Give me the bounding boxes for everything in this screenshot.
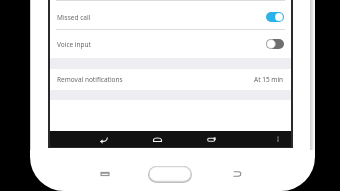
button[interactable]: Off [266, 39, 284, 49]
staticText: Voice input [57, 40, 91, 49]
button[interactable]: Back [92, 131, 114, 147]
button[interactable]: Missed call [50, 5, 291, 29]
button[interactable]: Home key [148, 166, 192, 183]
button[interactable]: Recent apps [200, 131, 222, 147]
button[interactable]: Menu [96, 166, 114, 182]
button[interactable]: Home [146, 131, 168, 147]
staticText: At 15 min [254, 75, 284, 84]
button[interactable]: Voice input [50, 30, 291, 58]
staticText: Missed call [57, 13, 91, 22]
button[interactable]: More options [269, 131, 287, 147]
button[interactable]: Removal notifications [50, 69, 291, 90]
button[interactable]: Back [228, 166, 246, 182]
staticText: Removal notifications [57, 75, 123, 84]
button[interactable]: On [266, 12, 284, 22]
